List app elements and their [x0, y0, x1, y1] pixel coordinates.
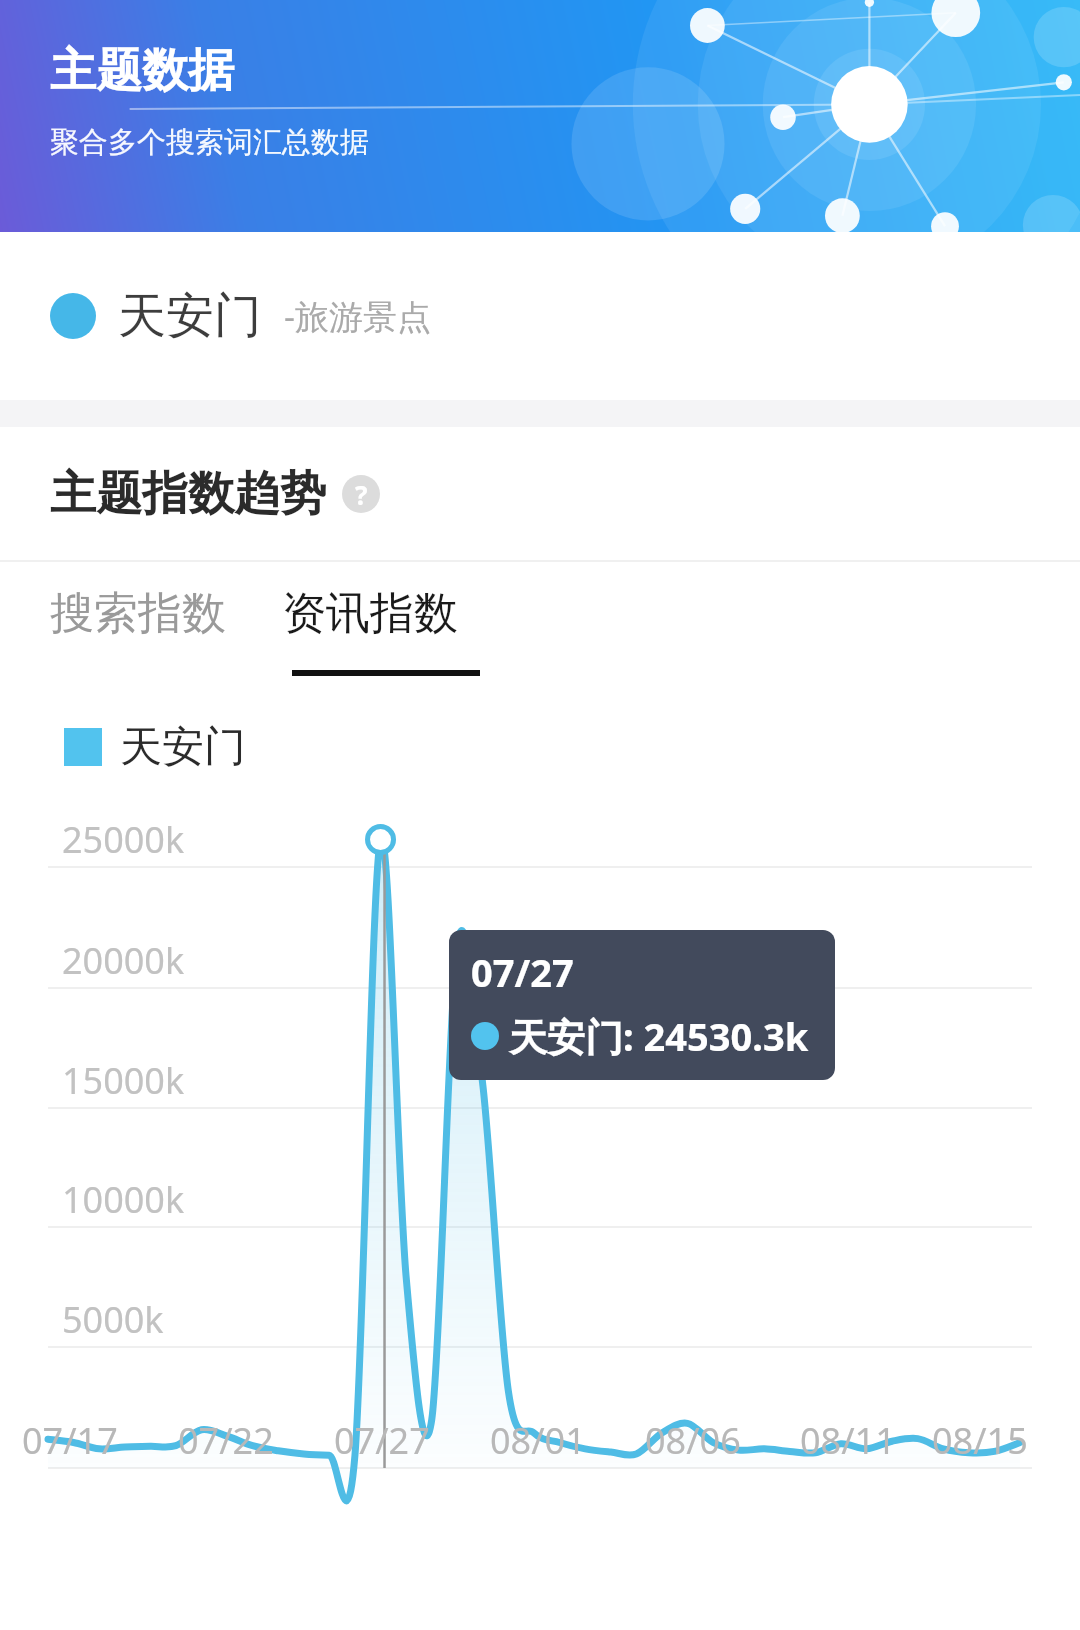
staticText: 08/11 [800, 1416, 896, 1465]
staticText: 主题指数趋势 [50, 465, 326, 523]
staticText: 08/06 [645, 1416, 741, 1465]
staticText: 25000k [62, 815, 185, 864]
button[interactable]: 天安门 [0, 232, 1080, 400]
staticText: 天安门 [120, 721, 246, 774]
button[interactable]: 资讯指数 [240, 562, 480, 702]
staticText: 天安门: 24530.3k [509, 1010, 809, 1062]
staticText: ? [355, 477, 368, 512]
staticText: 07/27 [471, 946, 574, 998]
staticText: 08/15 [932, 1416, 1028, 1465]
staticText: 07/22 [178, 1416, 274, 1465]
button[interactable]: 帮助 [342, 475, 380, 513]
staticText: 15000k [62, 1056, 185, 1105]
staticText: 天安门 [118, 286, 262, 346]
staticText: -旅游景点 [284, 293, 431, 339]
button[interactable]: 07/27 [449, 930, 835, 1080]
staticText: 资讯指数 [282, 586, 458, 641]
staticText: 20000k [62, 936, 185, 985]
staticText: 08/01 [490, 1416, 586, 1465]
staticText: 07/17 [22, 1416, 118, 1465]
staticText: 主题数据 [50, 42, 234, 100]
button[interactable]: 搜索指数 [0, 562, 240, 702]
staticText: 搜索指数 [50, 586, 226, 641]
staticText: 聚合多个搜索词汇总数据 [50, 124, 369, 161]
staticText: 07/27 [334, 1416, 430, 1465]
staticText: 10000k [62, 1175, 185, 1224]
staticText: 5000k [62, 1295, 164, 1344]
